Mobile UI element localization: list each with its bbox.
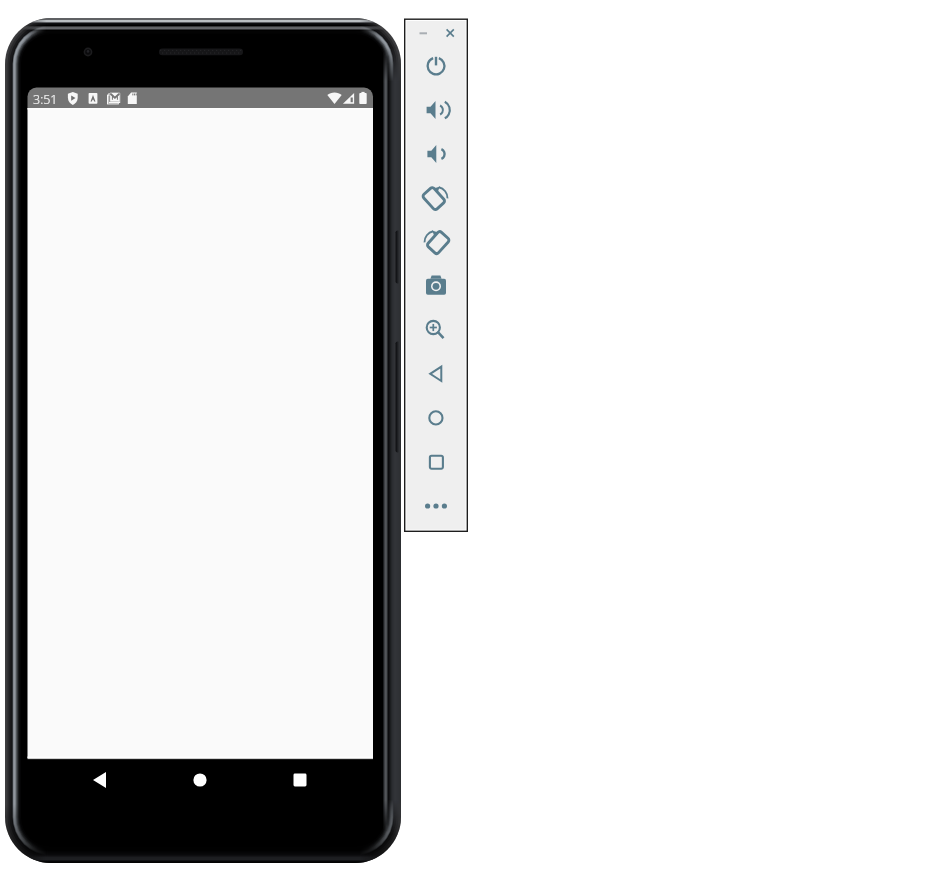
button[interactable]: Minimize	[418, 26, 432, 40]
button[interactable]: Rotate left	[420, 182, 452, 214]
button[interactable]: Back	[420, 358, 452, 390]
button[interactable]: Home	[420, 402, 452, 434]
button[interactable]: Close	[443, 26, 457, 40]
button[interactable]: Recent apps	[259, 758, 374, 804]
button[interactable]: Overview	[420, 446, 452, 478]
button[interactable]: More	[420, 490, 452, 522]
button[interactable]: Rotate right	[420, 226, 452, 258]
button[interactable]: Volume up	[420, 94, 452, 126]
button[interactable]: Zoom	[420, 314, 452, 346]
button[interactable]: Power	[420, 50, 452, 82]
button[interactable]: Volume down	[420, 138, 452, 170]
staticText: 3:51	[33, 91, 58, 108]
button[interactable]: Take screenshot	[420, 270, 452, 302]
button[interactable]: Home	[144, 758, 259, 804]
button[interactable]: Back	[28, 758, 144, 804]
